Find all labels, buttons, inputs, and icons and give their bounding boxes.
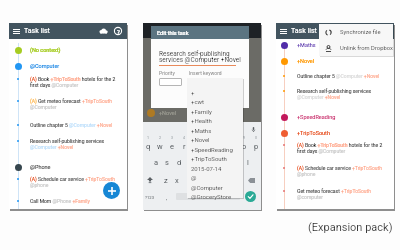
button[interactable]: g	[196, 156, 208, 168]
button[interactable]: @GroceryStore	[187, 191, 243, 201]
button[interactable]: Voice input	[249, 125, 257, 133]
button[interactable]: +Maths	[276, 39, 394, 51]
button[interactable]: Backspace	[246, 175, 256, 185]
button[interactable]: x	[171, 174, 183, 186]
button[interactable]: ,	[162, 192, 172, 202]
button[interactable]: 2015-07-14	[187, 163, 243, 173]
button[interactable]: Outline chapter 5 @Computer +Novel	[276, 72, 394, 82]
button[interactable]: v	[194, 174, 206, 186]
button[interactable]: Research self-publishing services	[9, 137, 127, 154]
button[interactable]: d	[173, 156, 185, 168]
button[interactable]: (A) Schedule car service +TripToSouth	[9, 175, 127, 192]
button[interactable]: (A) Get meteo forecast +TripToSouth	[9, 97, 127, 114]
button[interactable]: Priority	[159, 78, 182, 86]
button[interactable]: Sync to cloud	[97, 25, 109, 37]
button[interactable]: +Health	[187, 115, 243, 125]
button[interactable]: o	[238, 140, 250, 152]
button[interactable]: r	[178, 140, 190, 152]
button[interactable]: 0	[250, 132, 262, 144]
button[interactable]: f	[184, 156, 196, 168]
staticText: +SpeedReading	[191, 146, 233, 153]
button[interactable]: u	[214, 140, 226, 152]
staticText: p	[254, 142, 259, 151]
button[interactable]: c	[183, 174, 195, 186]
button[interactable]: l	[242, 156, 254, 168]
button[interactable]: t	[190, 140, 202, 152]
button[interactable]: 2	[154, 132, 166, 144]
button[interactable]: Get meteo forecast +TripToSouth	[276, 187, 394, 204]
button[interactable]: Research self-publishing services	[276, 87, 394, 104]
button[interactable]: +	[187, 87, 243, 97]
button[interactable]: +TripToSouth	[276, 127, 394, 139]
button[interactable]: Save task	[245, 191, 256, 202]
button[interactable]: Add task	[103, 182, 120, 199]
button[interactable]: a	[150, 156, 162, 168]
button[interactable]: +Family	[187, 106, 243, 116]
button[interactable]: q	[142, 140, 154, 152]
staticText: Get meteo forecast +TripToSouth	[297, 188, 371, 194]
staticText: @Computer +Novel	[297, 94, 341, 100]
button[interactable]: Shift	[145, 175, 155, 185]
button[interactable]: +Novel	[187, 134, 243, 144]
staticText: @computer	[297, 194, 323, 200]
button[interactable]: y	[202, 140, 214, 152]
staticText: y	[206, 142, 210, 151]
button[interactable]: (No context)	[9, 44, 127, 56]
button[interactable]: h	[207, 156, 219, 168]
button[interactable]: Help	[112, 25, 124, 37]
button[interactable]: Menu	[11, 26, 22, 37]
staticText: +Health	[191, 117, 212, 124]
button[interactable]: 3	[166, 132, 178, 144]
button[interactable]: 5	[190, 132, 202, 144]
button[interactable]: +SpeedReading	[276, 111, 394, 123]
staticText: first days @Computer	[30, 82, 79, 88]
button[interactable]: 6	[202, 132, 214, 144]
button[interactable]: ?123	[143, 192, 157, 202]
button[interactable]: Outline chapter 5 @Computer +Novel	[9, 121, 127, 131]
button[interactable]: j	[219, 156, 231, 168]
button[interactable]: i	[226, 140, 238, 152]
button[interactable]: +Novel	[276, 55, 394, 67]
button[interactable]: +Maths	[187, 125, 243, 135]
staticText: 2	[159, 136, 162, 140]
button[interactable]: @Phone	[9, 161, 127, 173]
staticText: Research self-publishing	[159, 50, 230, 58]
staticText: (Expansion pack)	[308, 221, 393, 234]
button[interactable]: 9	[238, 132, 250, 144]
button[interactable]: @Computer	[9, 60, 127, 72]
button[interactable]: Call Mom @Phone +Family	[9, 197, 127, 207]
staticText: u	[218, 142, 223, 151]
button[interactable]: @Computer	[187, 182, 243, 192]
button[interactable]: w	[154, 140, 166, 152]
staticText: (No context)	[30, 47, 61, 53]
button[interactable]: e	[166, 140, 178, 152]
button[interactable]: (A) Book +TripToSouth hotels for the 2	[9, 75, 127, 92]
button[interactable]: z	[160, 174, 172, 186]
button[interactable]: Space	[176, 193, 240, 200]
button[interactable]: +cwt	[187, 96, 243, 106]
button[interactable]: (A) Schedule car service +TripToSouth	[276, 164, 394, 181]
button[interactable]: @	[187, 172, 243, 182]
staticText: @phone	[30, 182, 49, 188]
staticText: w	[157, 142, 163, 151]
button[interactable]: 1	[142, 132, 154, 144]
button[interactable]: +SpeedReading	[187, 144, 243, 154]
button[interactable]: Unlink from Dropbox	[319, 40, 393, 56]
button[interactable]: Menu	[278, 26, 289, 37]
button[interactable]: p	[250, 140, 262, 152]
button[interactable]: s	[161, 156, 173, 168]
button[interactable]: 4	[178, 132, 190, 144]
staticText: g	[200, 158, 205, 167]
button[interactable]: (A) Book +TripToSouth hotels for the 2	[276, 141, 394, 158]
button[interactable]: Synchronize file	[319, 24, 393, 40]
button[interactable]: +TripToSouth	[187, 153, 243, 163]
